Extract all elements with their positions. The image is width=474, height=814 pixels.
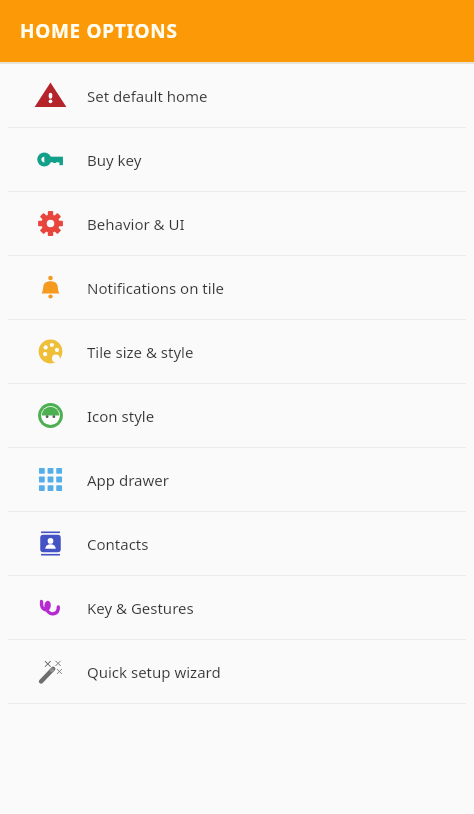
button[interactable]: Contacts — [0, 512, 474, 575]
staticText: Set default home — [87, 86, 208, 106]
button[interactable]: Tile size & style — [0, 320, 474, 383]
button[interactable]: Set default home — [0, 64, 474, 127]
staticText: Key & Gestures — [87, 598, 194, 618]
staticText: Buy key — [87, 150, 142, 170]
staticText: Tile size & style — [87, 342, 194, 362]
button[interactable]: Key & Gestures — [0, 576, 474, 639]
button[interactable]: Behavior & UI — [0, 192, 474, 255]
staticText: HOME OPTIONS — [20, 18, 178, 44]
staticText: App drawer — [87, 470, 169, 490]
button[interactable]: Icon style — [0, 384, 474, 447]
staticText: Behavior & UI — [87, 214, 185, 234]
button[interactable]: Notifications on tile — [0, 256, 474, 319]
button[interactable]: Buy key — [0, 128, 474, 191]
staticText: Icon style — [87, 406, 155, 426]
button[interactable]: App drawer — [0, 448, 474, 511]
staticText: Notifications on tile — [87, 278, 224, 298]
staticText: Contacts — [87, 534, 149, 554]
staticText: Quick setup wizard — [87, 662, 221, 682]
button[interactable]: Quick setup wizard — [0, 640, 474, 703]
